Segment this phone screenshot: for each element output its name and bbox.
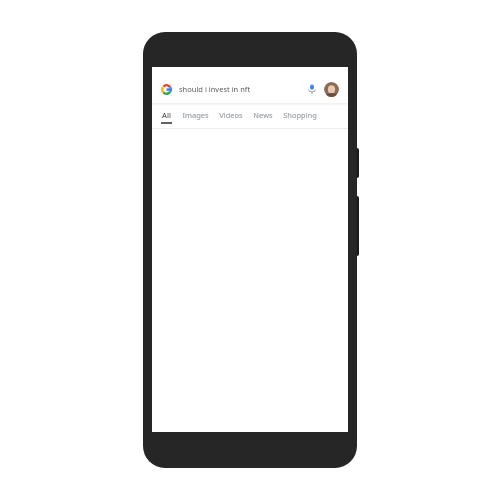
- button[interactable]: Voice search: [304, 81, 320, 97]
- button[interactable]: Images: [182, 110, 219, 122]
- staticText: All: [162, 110, 171, 120]
- staticText: Videos: [219, 110, 243, 120]
- button[interactable]: should i invest in nft: [152, 75, 348, 103]
- button[interactable]: News: [253, 110, 283, 122]
- staticText: Images: [182, 110, 209, 120]
- button[interactable]: Videos: [219, 110, 253, 122]
- staticText: News: [253, 110, 273, 120]
- button[interactable]: Shopping: [283, 110, 327, 122]
- staticText: Shopping: [283, 110, 317, 120]
- button[interactable]: All: [161, 110, 182, 124]
- button[interactable]: Account: [324, 82, 339, 97]
- staticText: should i invest in nft: [179, 84, 304, 94]
